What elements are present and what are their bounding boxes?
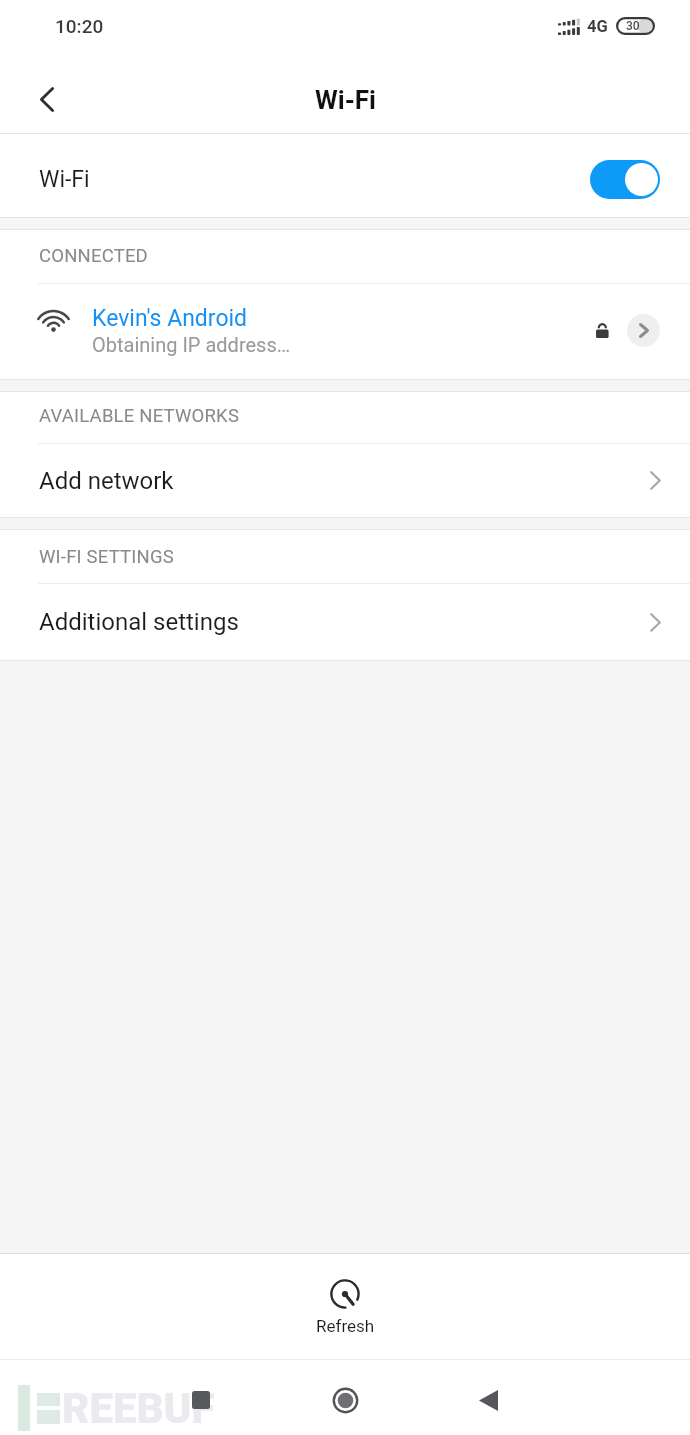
staticText: CONNECTED — [39, 245, 148, 267]
staticText: REEBUF — [62, 1384, 215, 1433]
staticText: Additional settings — [39, 608, 239, 636]
button[interactable]: Refresh — [290, 1254, 400, 1359]
staticText: AVAILABLE NETWORKS — [39, 405, 240, 427]
button[interactable] — [627, 314, 660, 347]
staticText: Obtaining IP address… — [92, 333, 291, 356]
button[interactable] — [466, 1378, 510, 1422]
staticText: 4G — [587, 17, 608, 36]
button[interactable]: Kevin's Android — [0, 284, 690, 379]
button[interactable]: Additional settings — [0, 584, 690, 660]
staticText: Add network — [39, 467, 174, 495]
staticText: 30 — [626, 19, 640, 33]
staticText: WI-FI SETTINGS — [39, 546, 174, 568]
button[interactable]: Add network — [0, 444, 690, 517]
button[interactable]: Wi-Fi — [0, 134, 690, 217]
button[interactable] — [590, 160, 660, 199]
staticText: 10:20 — [55, 15, 104, 37]
staticText: Kevin's Android — [92, 305, 248, 332]
staticText: Refresh — [316, 1316, 375, 1336]
button[interactable] — [25, 77, 69, 121]
staticText: Wi-Fi — [315, 85, 376, 115]
button[interactable] — [179, 1378, 223, 1422]
button[interactable] — [323, 1378, 367, 1422]
staticText: Wi-Fi — [39, 166, 90, 193]
